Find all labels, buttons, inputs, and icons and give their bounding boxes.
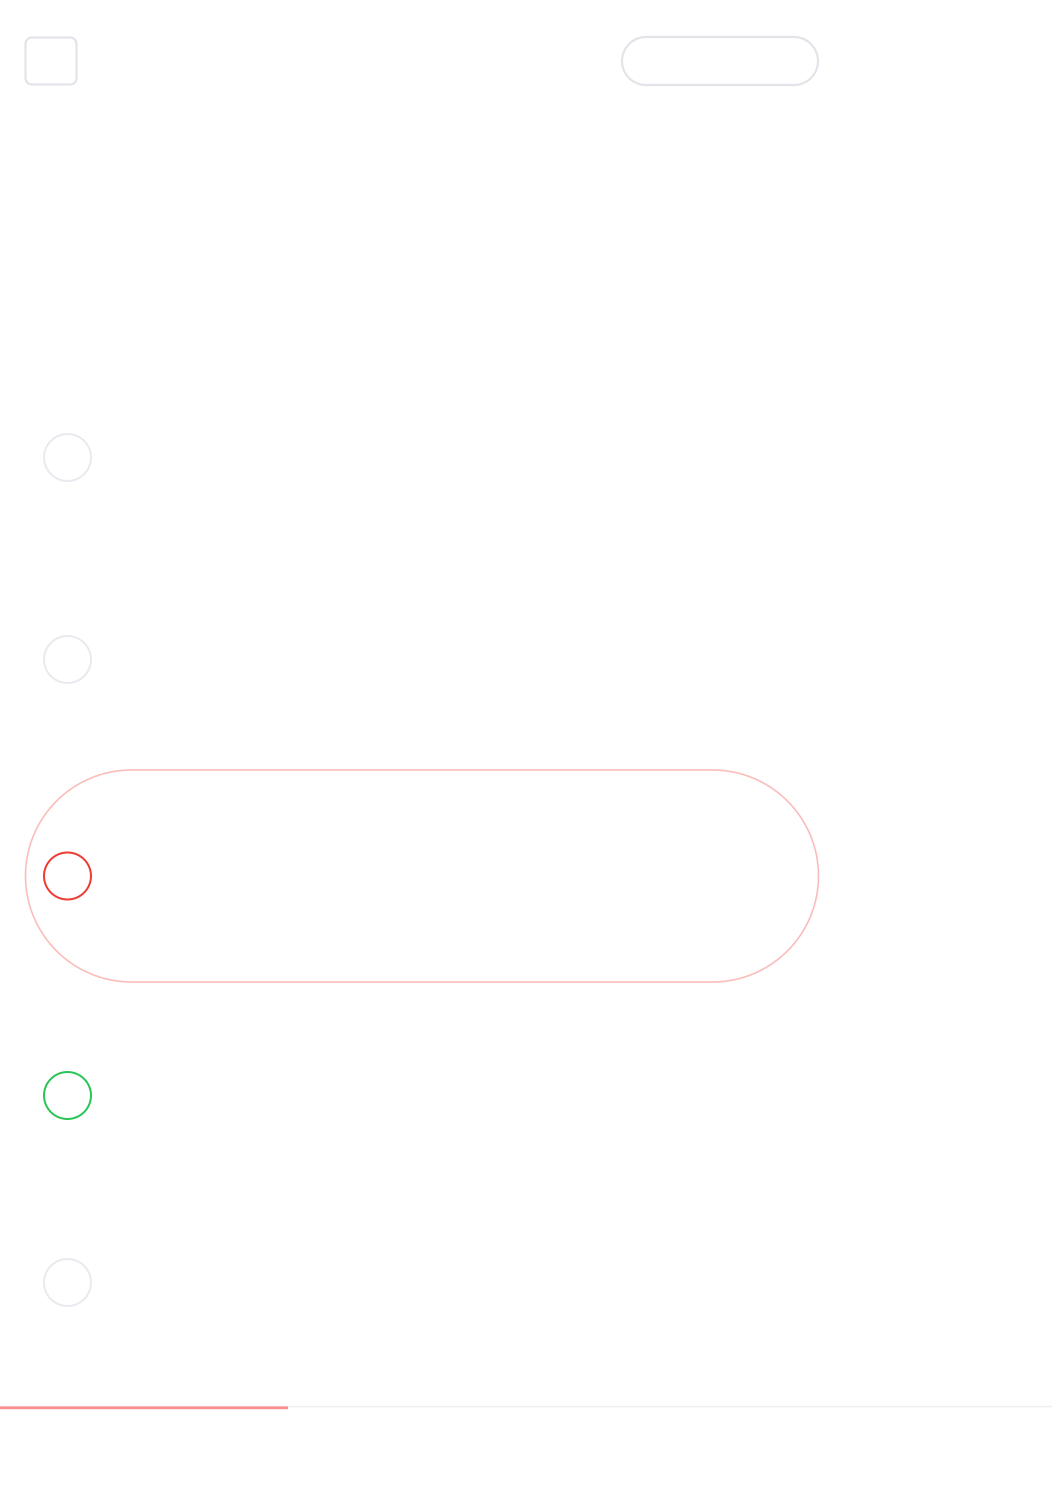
button[interactable]: Lists [25, 37, 76, 84]
button[interactable]: Complete reminder [44, 434, 91, 481]
button[interactable]: Complete reminder [44, 1072, 91, 1119]
button[interactable]: Complete reminder [44, 1259, 91, 1306]
button[interactable]: Complete overdue reminder [44, 852, 91, 899]
button[interactable]: Filter [622, 37, 818, 85]
button[interactable]: Complete reminder [44, 636, 91, 683]
